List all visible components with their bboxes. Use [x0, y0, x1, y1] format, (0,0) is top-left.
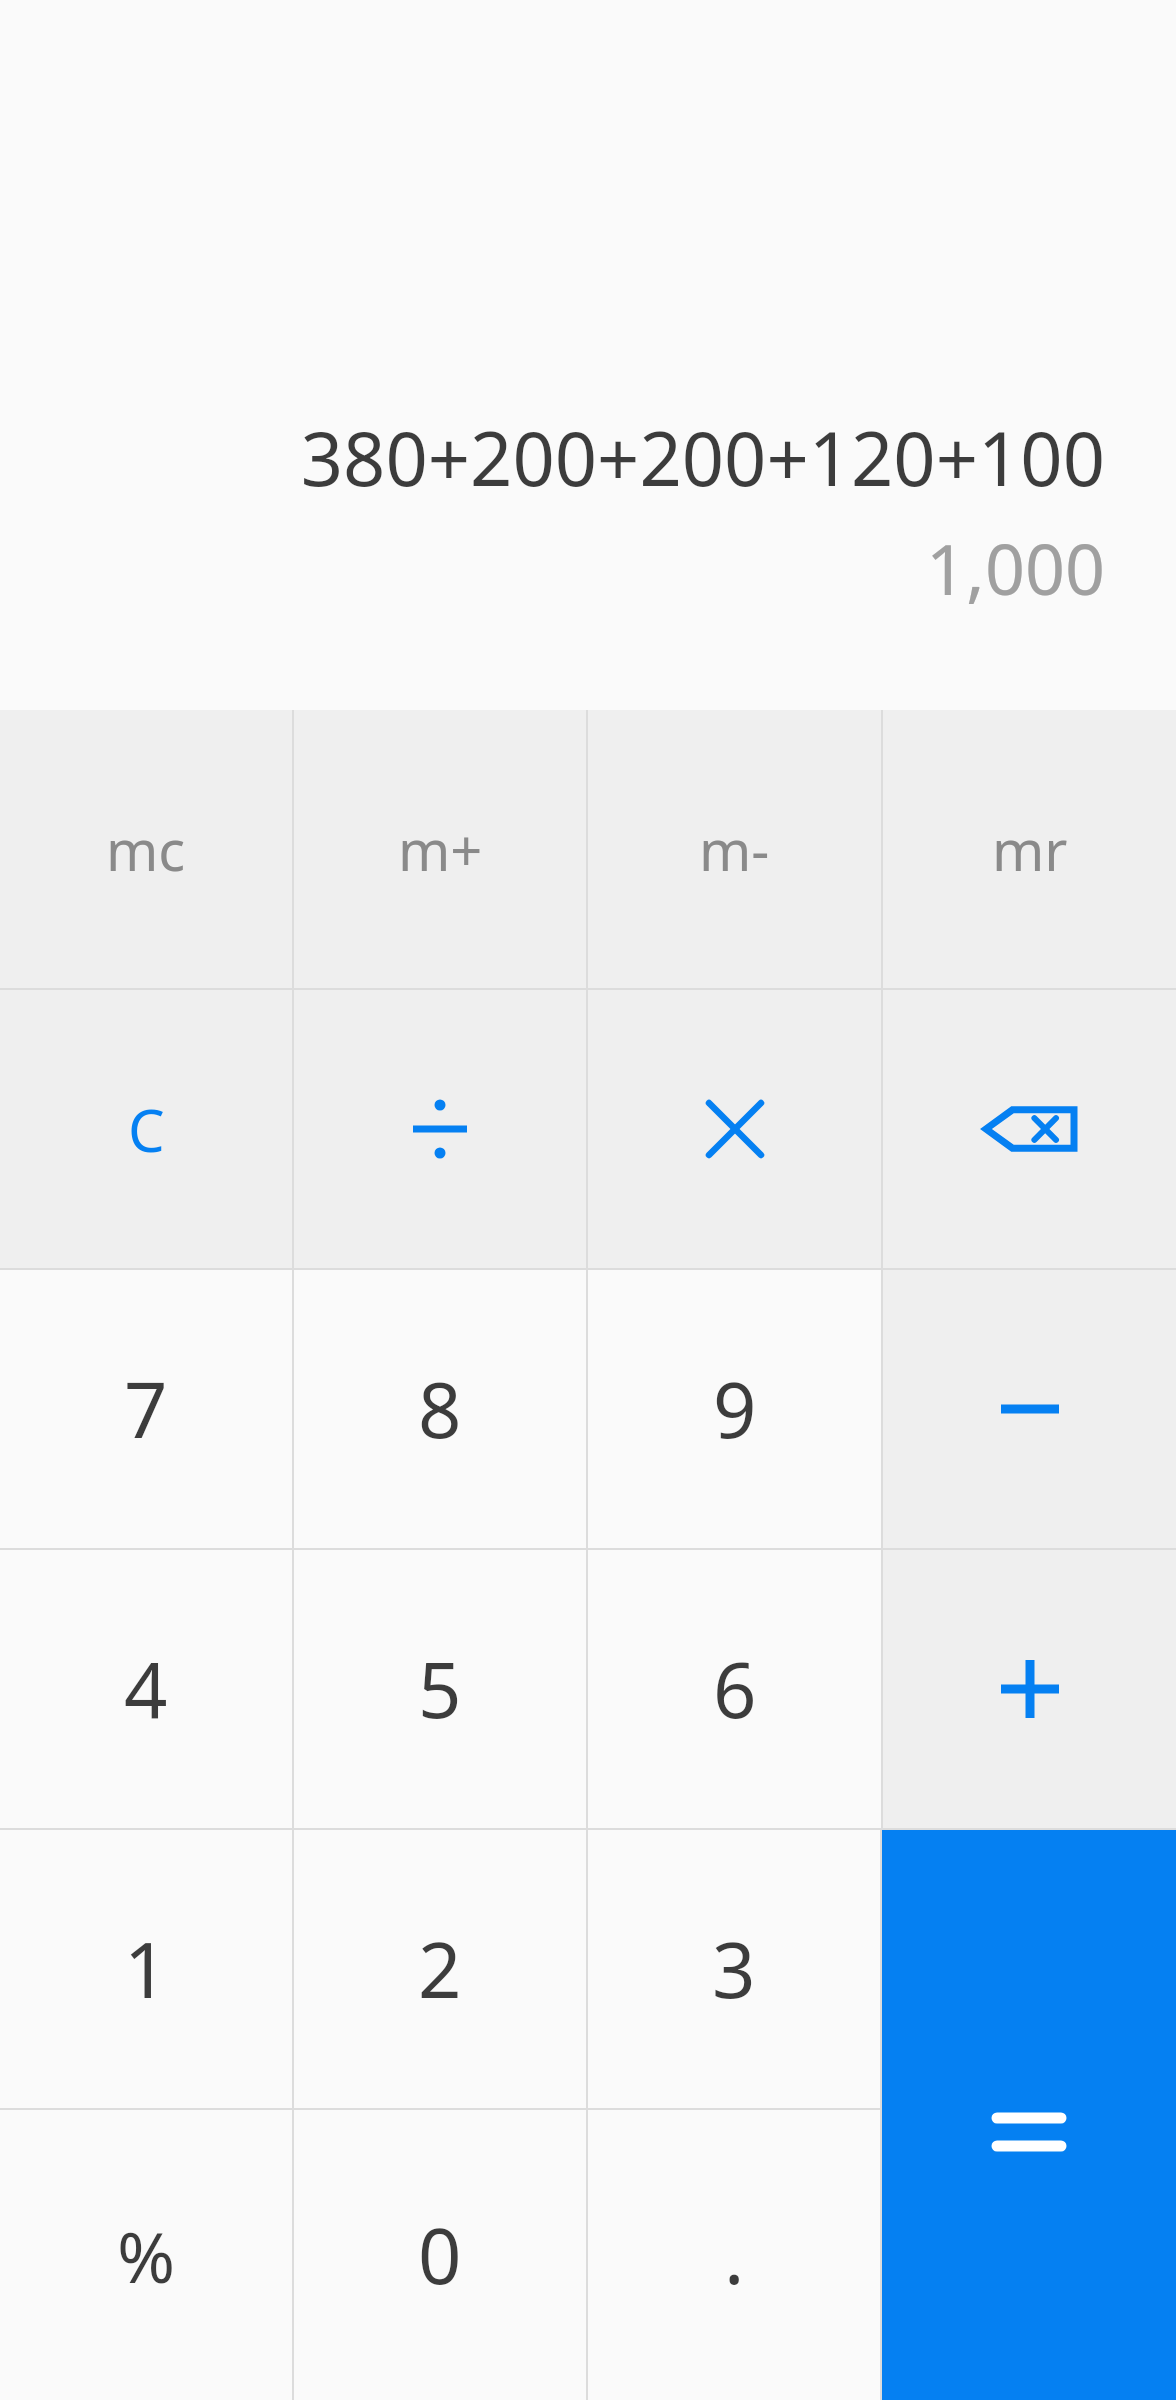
button[interactable]: 4	[0, 1550, 292, 1828]
staticText: 8	[418, 1357, 462, 1461]
button[interactable]: 5	[294, 1550, 586, 1828]
staticText: 1,000	[926, 520, 1105, 615]
staticText: 9	[713, 1357, 757, 1461]
button[interactable]: Minus	[883, 1270, 1176, 1548]
staticText: mc	[106, 811, 186, 887]
staticText: 2	[418, 1917, 462, 2021]
button[interactable]: m+	[294, 710, 586, 988]
button[interactable]: 7	[0, 1270, 292, 1548]
button[interactable]: Equals	[882, 1830, 1176, 2400]
button[interactable]: Divide	[294, 990, 586, 1268]
staticText: 380+200+200+120+100	[300, 407, 1105, 508]
staticText: .	[724, 2203, 745, 2307]
staticText: 7	[124, 1357, 168, 1461]
staticText: 0	[418, 2203, 462, 2307]
button[interactable]: 3	[588, 1830, 880, 2108]
button[interactable]: Backspace	[883, 990, 1176, 1268]
button[interactable]: %	[0, 2110, 292, 2400]
button[interactable]: 9	[588, 1270, 881, 1548]
button[interactable]: mr	[883, 710, 1176, 988]
staticText: m+	[398, 811, 483, 887]
button[interactable]: Multiply	[588, 990, 881, 1268]
button[interactable]: 2	[294, 1830, 586, 2108]
staticText: m-	[699, 811, 770, 887]
button[interactable]: .	[588, 2110, 880, 2400]
button[interactable]: m-	[588, 710, 881, 988]
staticText: 4	[124, 1637, 168, 1741]
button[interactable]: 1	[0, 1830, 292, 2108]
staticText: 5	[418, 1637, 462, 1741]
staticText: C	[128, 1090, 165, 1169]
staticText: %	[117, 2208, 176, 2303]
button[interactable]: 8	[294, 1270, 586, 1548]
staticText: 3	[712, 1917, 756, 2021]
staticText: 1	[124, 1917, 168, 2021]
staticText: 6	[713, 1637, 757, 1741]
staticText: mr	[992, 811, 1068, 887]
button[interactable]: C	[0, 990, 292, 1268]
button[interactable]: 6	[588, 1550, 881, 1828]
button[interactable]: Plus	[883, 1550, 1176, 1828]
button[interactable]: mc	[0, 710, 292, 988]
button[interactable]: 0	[294, 2110, 586, 2400]
